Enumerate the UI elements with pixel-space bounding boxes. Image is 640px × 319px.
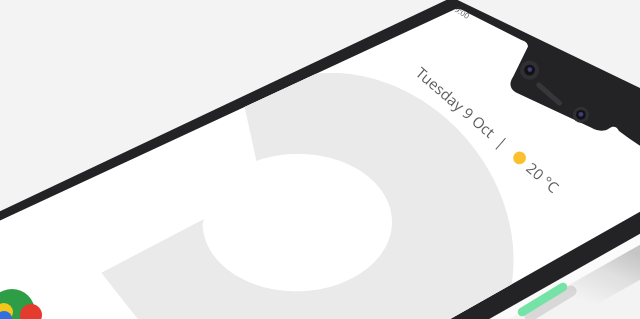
button[interactable]: Pixel phone home screen <box>0 0 640 319</box>
